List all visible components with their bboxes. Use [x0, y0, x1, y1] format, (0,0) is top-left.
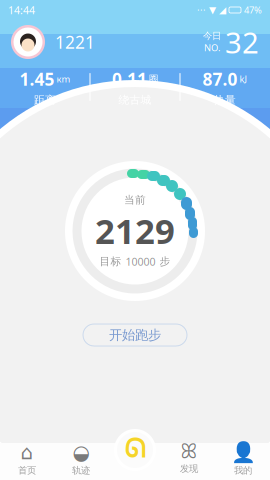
staticText: ··· — [197, 4, 206, 16]
staticText: 32 — [225, 22, 259, 61]
staticText: 今日 — [203, 30, 221, 42]
button[interactable]: 今日 — [203, 22, 259, 61]
staticText: ⌂ — [20, 441, 33, 464]
staticText: 圈 — [149, 73, 158, 85]
button[interactable]: 开始跑步 — [83, 324, 187, 346]
button[interactable]: Start run — [108, 423, 162, 480]
staticText: 开始跑步 — [109, 327, 161, 343]
staticText: 当前 — [124, 193, 146, 206]
staticText: ꕤ — [180, 442, 197, 462]
staticText: ◒ — [72, 441, 89, 464]
staticText: 步 — [159, 255, 170, 268]
button[interactable]: 1221 — [11, 25, 95, 59]
staticText: 轨迹 — [72, 465, 90, 476]
staticText: 首页 — [18, 465, 36, 476]
staticText: ᘏ — [124, 438, 145, 462]
button[interactable]: ◒ — [54, 423, 108, 480]
staticText: 0.11 — [112, 67, 147, 90]
staticText: 10000 — [125, 254, 155, 269]
staticText: 发现 — [180, 463, 198, 474]
staticText: 距离 — [34, 93, 56, 107]
staticText: 47% — [244, 4, 262, 16]
staticText: 👤 — [230, 441, 255, 464]
staticText: 绕古城 — [118, 93, 151, 107]
staticText: kJ — [239, 73, 247, 85]
staticText: кm — [56, 73, 70, 85]
staticText: ◢ — [219, 5, 226, 15]
staticText: 我的 — [234, 465, 252, 476]
staticText: 2129 — [95, 207, 175, 253]
button[interactable]: ꕤ — [162, 423, 216, 480]
staticText: 目标 — [99, 255, 121, 268]
staticText: 14:44 — [8, 3, 35, 17]
staticText: ▼ — [209, 5, 216, 15]
staticText: NO. — [204, 41, 221, 54]
button[interactable]: ⌂ — [0, 423, 54, 480]
staticText: 1221 — [55, 30, 95, 53]
staticText: 1.45 — [19, 67, 54, 90]
button[interactable]: 👤 — [216, 423, 270, 480]
staticText: 87.0 — [202, 67, 237, 90]
staticText: 热量 — [214, 93, 236, 107]
